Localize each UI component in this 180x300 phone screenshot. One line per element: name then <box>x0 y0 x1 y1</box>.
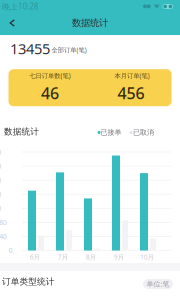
staticText: 已取消 <box>101 115 180 150</box>
staticText: 七日订单数(笔) <box>0 59 133 92</box>
staticText: 120 <box>0 191 18 226</box>
staticText: 80 <box>0 205 18 240</box>
staticText: 8月 <box>70 239 112 275</box>
staticText: 280 <box>0 134 18 170</box>
staticText: 本月订单(笔) <box>61 59 180 92</box>
staticText: 40 <box>0 219 18 254</box>
staticText: 160 <box>0 176 18 212</box>
staticText: 240 <box>0 148 18 184</box>
staticText: 9月 <box>98 239 140 275</box>
staticText: 订单类型统计 <box>0 260 133 300</box>
button[interactable]: 返回 <box>0 11 24 35</box>
staticText: 10月 <box>118 239 175 275</box>
staticText: 13455 <box>10 39 50 58</box>
staticText: 已接单 <box>69 115 153 150</box>
staticText: 0 <box>3 233 18 268</box>
staticText: 6月 <box>14 239 56 275</box>
staticText: 数据统计 <box>0 110 91 153</box>
staticText: 456 <box>117 82 144 104</box>
staticText: 7月 <box>42 239 84 275</box>
staticText: 200 <box>0 162 18 198</box>
staticText: 46 <box>41 82 59 104</box>
staticText: 全部订单(笔) <box>0 33 139 67</box>
staticText: 晚上10:28 <box>0 0 92 28</box>
staticText: 单位:笔 <box>112 265 180 300</box>
staticText: 数据统计 <box>72 17 108 29</box>
